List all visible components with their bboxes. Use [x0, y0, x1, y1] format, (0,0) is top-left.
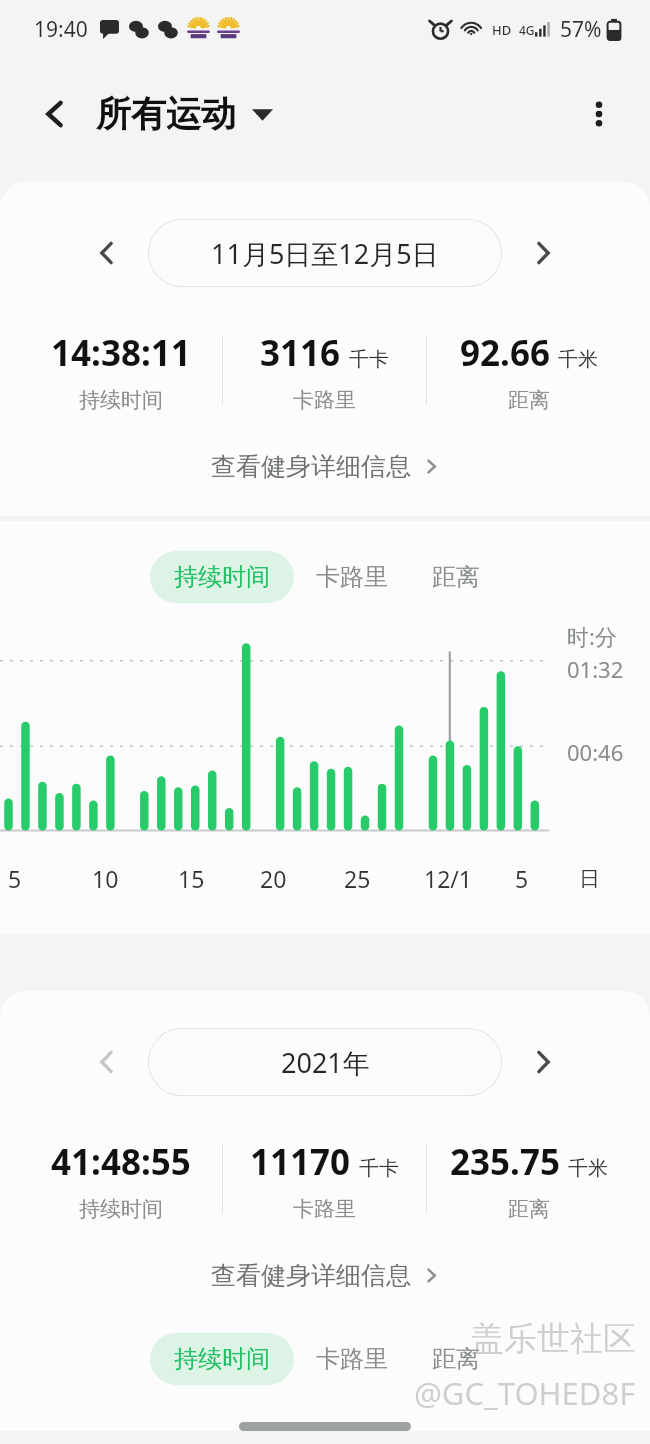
staticText: 持续时间 — [79, 387, 163, 413]
button[interactable]: 2021年 — [148, 1028, 502, 1096]
staticText: 4G — [519, 22, 535, 38]
staticText: 卡路里 — [293, 387, 356, 413]
staticText: HD — [492, 21, 512, 39]
staticText: 01:32 — [567, 654, 624, 684]
staticText: 5 — [8, 863, 22, 894]
staticText: 57% — [560, 15, 602, 44]
staticText: 15 — [178, 863, 205, 894]
staticText: 千米 — [558, 347, 598, 372]
staticText: 盖乐世社区 — [471, 1318, 636, 1360]
staticText: 11170 — [250, 1138, 351, 1186]
staticText: 25 — [344, 863, 371, 894]
staticText: 距离 — [432, 562, 480, 592]
staticText: 所有运动 — [96, 92, 236, 136]
button[interactable]: Next period — [516, 226, 570, 280]
staticText: 3116 — [260, 329, 341, 377]
staticText: 千卡 — [359, 1156, 399, 1181]
staticText: 查看健身详细信息 — [211, 1260, 411, 1291]
staticText: 卡路里 — [293, 1196, 356, 1222]
staticText: 距离 — [508, 1196, 550, 1222]
button[interactable]: Previous period — [80, 1035, 134, 1089]
staticText: 时:分 — [567, 621, 617, 651]
button[interactable]: 卡路里 — [294, 551, 410, 603]
staticText: 距离 — [432, 1344, 480, 1374]
button[interactable]: 持续时间 — [150, 1333, 294, 1385]
staticText: 卡路里 — [316, 562, 388, 592]
staticText: 日 — [579, 866, 600, 892]
button[interactable]: 11月5日至12月5日 — [148, 219, 502, 287]
staticText: 2021年 — [281, 1044, 370, 1081]
staticText: 5 — [515, 863, 529, 894]
button[interactable]: 距离 — [410, 1333, 502, 1385]
button[interactable]: Previous period — [80, 226, 134, 280]
staticText: 千卡 — [349, 347, 389, 372]
button[interactable]: 距离 — [410, 551, 502, 603]
staticText: 41:48:55 — [51, 1138, 191, 1186]
button[interactable]: More options — [568, 83, 630, 145]
button[interactable]: Next period — [516, 1035, 570, 1089]
button[interactable]: 持续时间 — [150, 551, 294, 603]
button[interactable]: 所有运动 — [90, 84, 279, 144]
staticText: 持续时间 — [79, 1196, 163, 1222]
staticText: 12/1 — [424, 863, 473, 894]
staticText: 14:38:11 — [51, 329, 191, 377]
button[interactable]: 查看健身详细信息 — [0, 1260, 650, 1291]
button[interactable]: 卡路里 — [294, 1333, 410, 1385]
staticText: 千米 — [568, 1156, 608, 1181]
staticText: 持续时间 — [174, 562, 270, 592]
staticText: 19:40 — [34, 15, 88, 44]
staticText: 查看健身详细信息 — [211, 451, 411, 482]
staticText: 卡路里 — [316, 1344, 388, 1374]
staticText: 20 — [260, 863, 287, 894]
staticText: 92.66 — [460, 329, 550, 377]
staticText: 距离 — [508, 387, 550, 413]
staticText: @GC_TOHED8F — [414, 1372, 636, 1414]
staticText: 10 — [92, 863, 119, 894]
button[interactable]: 查看健身详细信息 — [0, 451, 650, 482]
staticText: 持续时间 — [174, 1344, 270, 1374]
staticText: 235.75 — [450, 1138, 560, 1186]
staticText: 00:46 — [567, 737, 624, 767]
staticText: 11月5日至12月5日 — [211, 235, 439, 272]
button[interactable]: Back — [24, 83, 86, 145]
